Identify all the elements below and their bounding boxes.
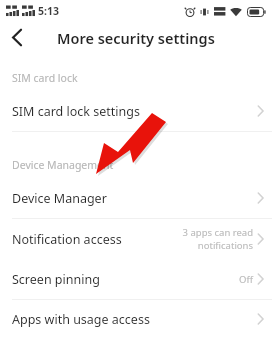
staticText: Device Manager	[12, 190, 107, 207]
button[interactable]: Screen pinning	[0, 259, 272, 299]
staticText: Notification access	[12, 231, 122, 248]
staticText: 5:13	[38, 4, 59, 18]
button[interactable]: Notification access	[0, 219, 272, 259]
staticText: More security settings	[57, 28, 215, 48]
staticText: Off	[239, 273, 253, 286]
staticText: Apps with usage access	[12, 311, 150, 328]
button[interactable]: Back	[0, 22, 34, 53]
staticText: SIM card lock	[12, 71, 78, 85]
staticText: Device Management	[12, 158, 114, 172]
staticText: 3 apps can read	[182, 226, 253, 239]
staticText: Screen pinning	[12, 271, 100, 288]
button[interactable]: Device Manager	[0, 178, 272, 218]
staticText: notifications	[197, 239, 253, 252]
staticText: SIM card lock settings	[12, 103, 140, 120]
button[interactable]: SIM card lock settings	[0, 91, 272, 131]
button[interactable]: Apps with usage access	[0, 300, 272, 338]
